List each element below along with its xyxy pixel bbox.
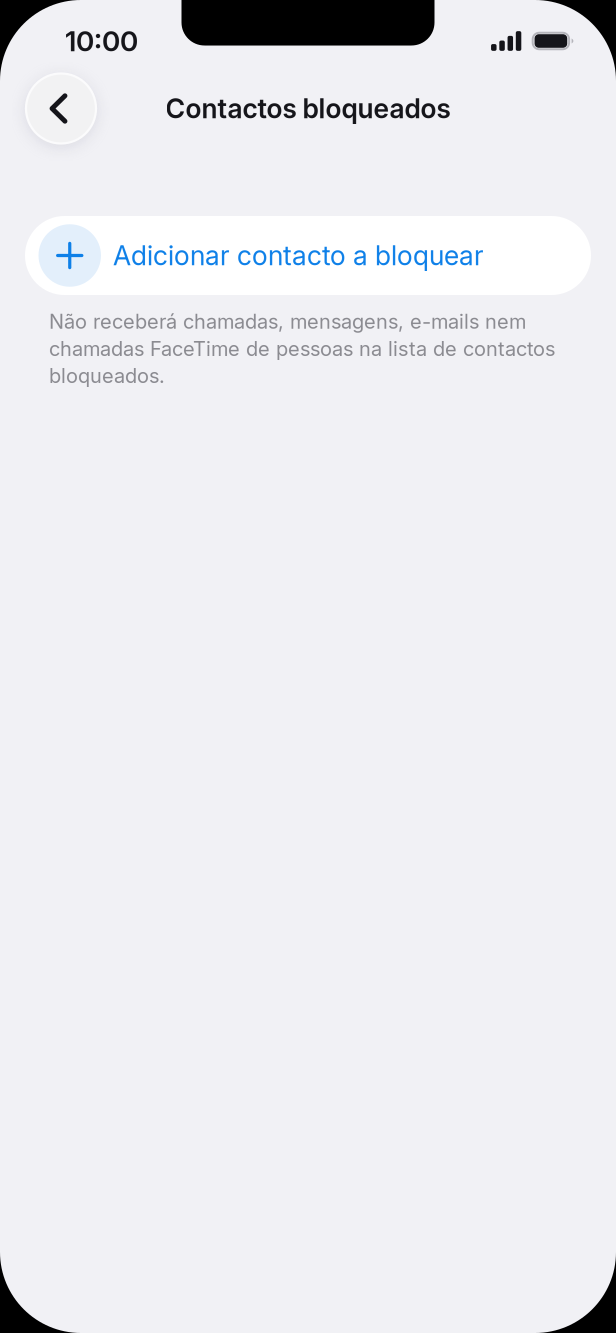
button[interactable]: Voltar — [21, 68, 101, 148]
staticText: 10:00 — [65, 24, 138, 58]
button[interactable]: Adicionar contacto a bloquear — [25, 216, 591, 295]
staticText: Não receberá chamadas, mensagens, e-mail… — [49, 308, 555, 389]
staticText: Contactos bloqueados — [165, 92, 450, 125]
staticText: Adicionar contacto a bloquear — [113, 239, 484, 272]
